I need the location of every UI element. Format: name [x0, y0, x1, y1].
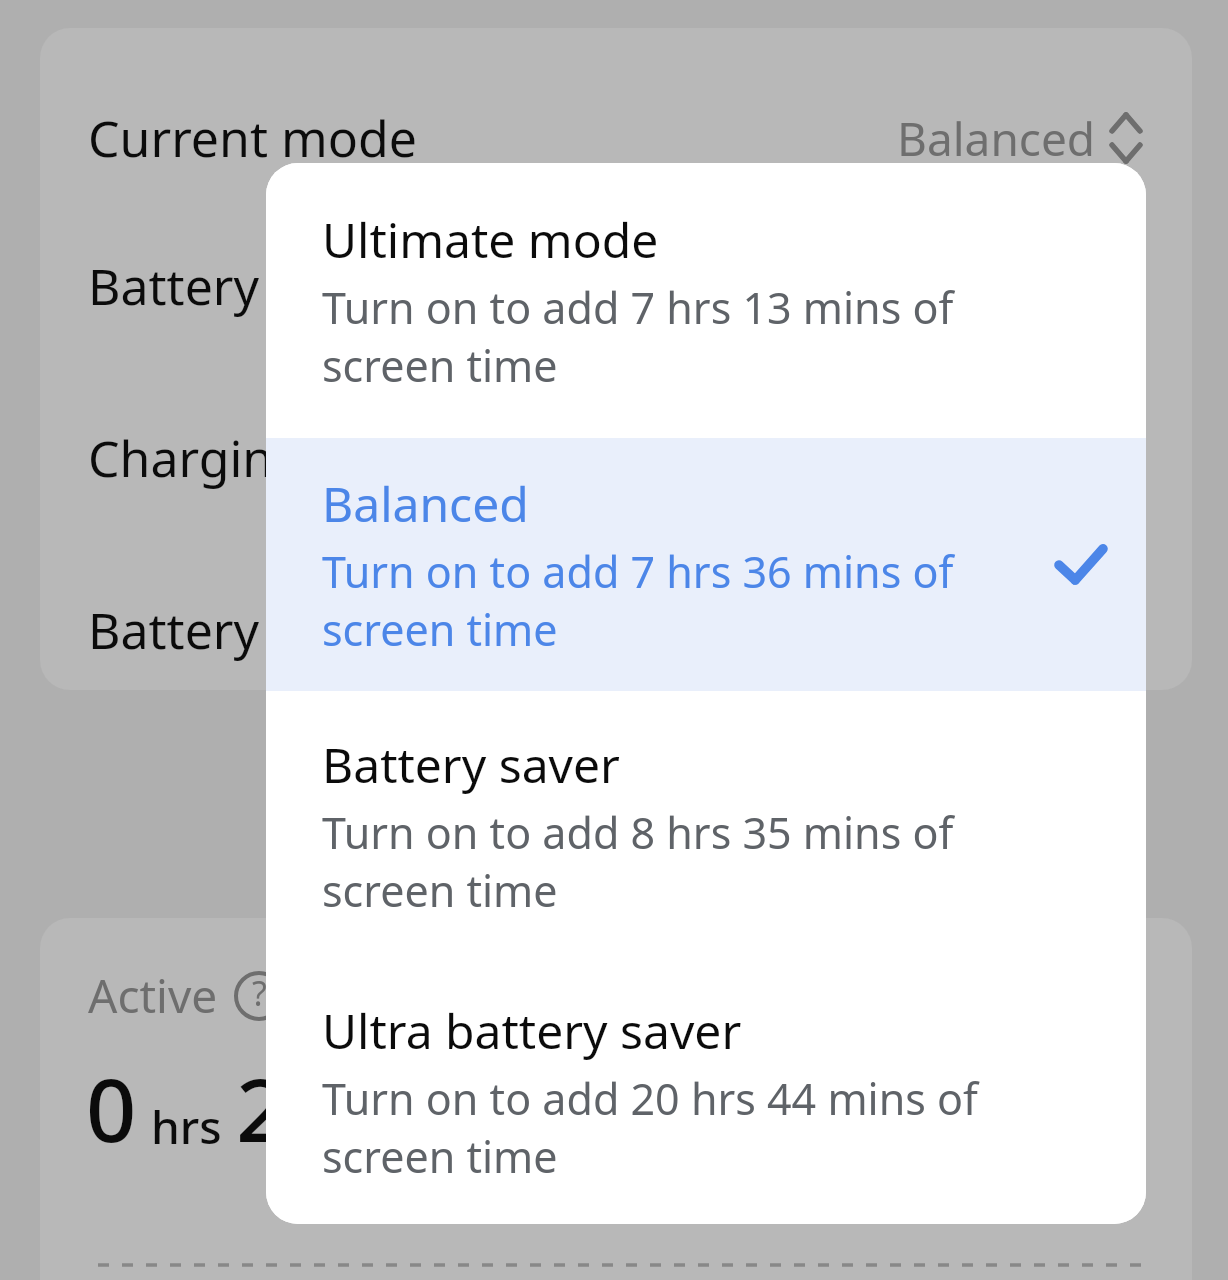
staticText: hrs — [151, 1095, 222, 1158]
button[interactable]: Balanced — [266, 438, 1146, 691]
staticText: Battery saver — [322, 732, 620, 797]
staticText: Ultimate mode — [322, 207, 659, 272]
button[interactable]: Ultra battery saver — [266, 959, 1146, 1224]
staticText: Turn on to add 7 hrs 36 mins of screen t… — [322, 542, 954, 658]
staticText: Ultra battery saver — [322, 998, 742, 1063]
other: Selected — [1052, 536, 1110, 594]
staticText: Battery — [88, 596, 259, 664]
button[interactable]: Ultimate mode — [266, 163, 1146, 438]
button[interactable]: Help about active time — [234, 971, 284, 1021]
staticText: Turn on to add 7 hrs 13 mins of screen t… — [322, 278, 954, 394]
button[interactable]: Battery — [40, 568, 1192, 690]
button[interactable]: Current mode — [40, 76, 1192, 200]
staticText: Active — [88, 964, 218, 1027]
button[interactable]: Battery saver — [266, 691, 1146, 959]
staticText: Turn on to add 8 hrs 35 mins of screen t… — [322, 803, 954, 919]
staticText: Balanced — [897, 107, 1096, 170]
staticText: mins — [351, 1095, 459, 1158]
button[interactable]: Change current mode — [1108, 109, 1144, 167]
staticText: ? — [252, 970, 267, 1016]
button[interactable]: Charging — [40, 396, 1192, 520]
staticText: Balanced — [322, 471, 529, 536]
staticText: 0 — [86, 1048, 137, 1168]
staticText: 28 — [236, 1048, 337, 1168]
staticText: Turn on to add 20 hrs 44 mins of screen … — [322, 1069, 978, 1185]
button[interactable]: Battery — [40, 224, 1192, 348]
staticText: Charging — [88, 424, 304, 492]
staticText: Battery — [88, 252, 259, 320]
button[interactable]: Active — [88, 964, 284, 1027]
staticText: Current mode — [88, 104, 417, 172]
